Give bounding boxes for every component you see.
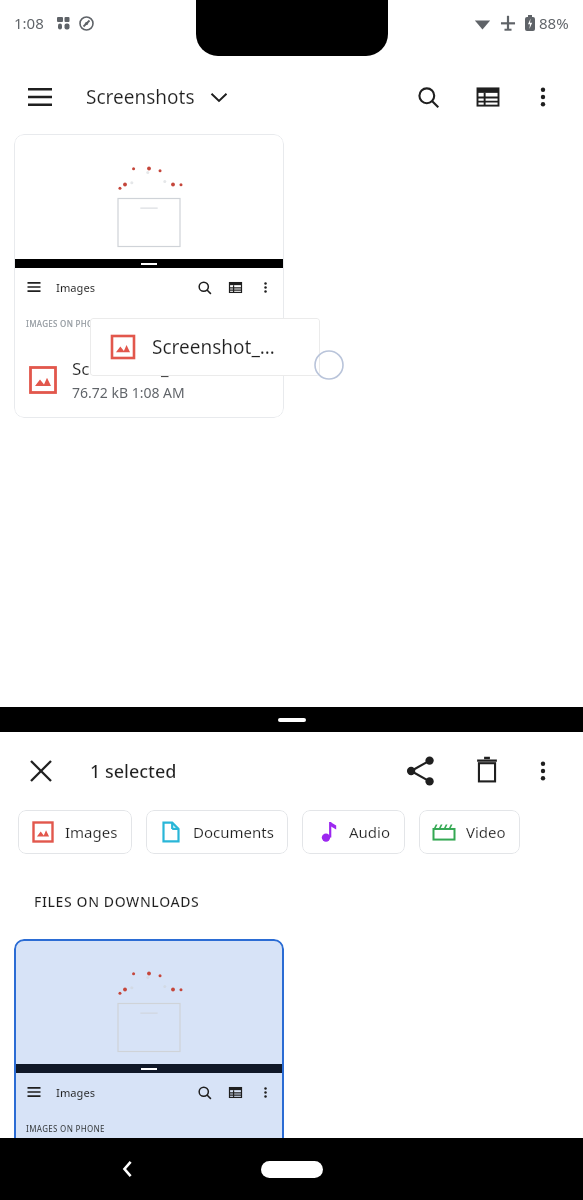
button[interactable]: Images [14,134,284,418]
staticText: Screenshot_201… [72,357,212,380]
button[interactable]: Screenshots [82,78,233,116]
staticText: FILES ON DOWNLOADS [34,892,200,911]
staticText: 1:08 [14,13,44,33]
staticText: Video [466,822,506,842]
button[interactable]: Navigation menu [20,77,60,117]
staticText: Documents [193,822,274,842]
staticText: Screenshot_… [152,334,275,360]
button[interactable]: Home [261,1161,323,1178]
staticText: Audio [349,822,391,842]
button[interactable]: Video [419,810,520,854]
staticText: Images [65,822,118,842]
button[interactable]: Change view [467,76,509,118]
button[interactable]: Delete [465,749,509,793]
button[interactable]: Back [108,1149,148,1189]
button[interactable]: Screenshot_… [90,318,320,376]
button[interactable]: Documents [146,810,288,854]
staticText: IMAGES ON PHONE [26,1123,105,1134]
staticText: Images [56,1085,96,1100]
button[interactable]: Images [18,810,132,854]
staticText: Images [56,280,96,295]
staticText: Screenshots [86,84,195,110]
button[interactable]: Images [14,939,284,1200]
staticText: 1 selected [90,759,177,784]
button[interactable]: Search [407,76,449,118]
button[interactable]: Share [399,749,443,793]
button[interactable]: More options [523,77,563,117]
button[interactable]: More options [523,751,563,791]
button[interactable]: Close selection [20,750,62,792]
staticText: 88% [539,13,569,33]
staticText: 76.72 kB 1:08 AM [72,383,185,402]
staticText: IMAGES ON PHONE [26,318,105,329]
button[interactable]: Audio [302,810,405,854]
